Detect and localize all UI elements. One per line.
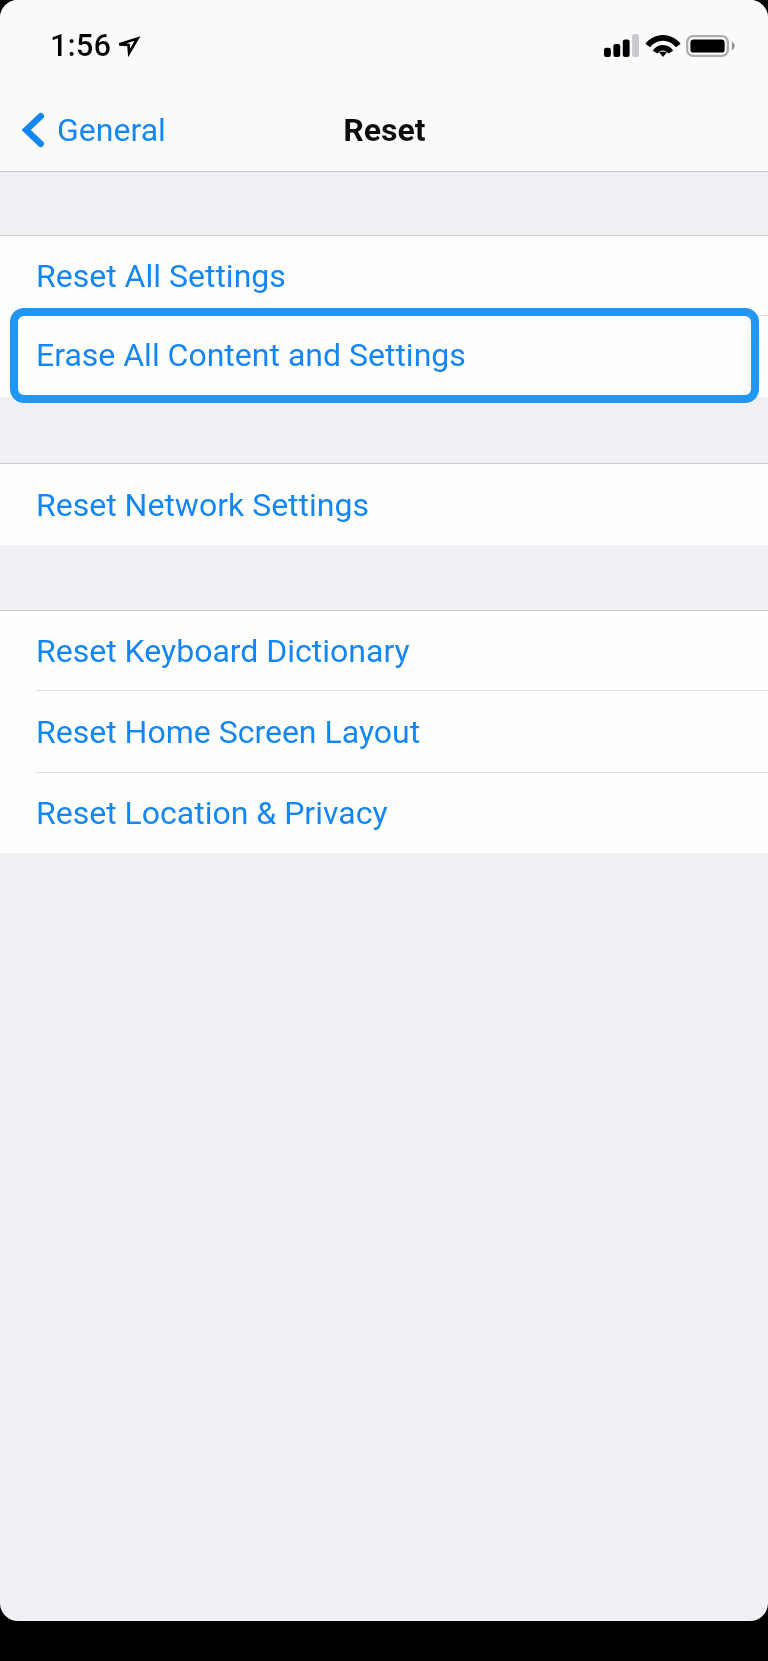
staticText: Reset Keyboard Dictionary — [36, 632, 410, 670]
button[interactable]: Erase All Content and Settings — [0, 316, 768, 397]
staticText: Reset Home Screen Layout — [36, 713, 421, 751]
staticText: Reset — [343, 111, 426, 149]
button[interactable]: Reset Location & Privacy — [0, 773, 768, 853]
staticText: Reset All Settings — [36, 257, 286, 295]
staticText: Reset Network Settings — [36, 486, 369, 524]
button[interactable]: Reset Home Screen Layout — [0, 691, 768, 773]
staticText: Reset Location & Privacy — [36, 794, 388, 832]
button[interactable]: Reset Keyboard Dictionary — [0, 611, 768, 691]
staticText: Erase All Content and Settings — [36, 336, 466, 374]
button[interactable]: Back to General — [0, 101, 180, 159]
button[interactable]: Reset Network Settings — [0, 464, 768, 545]
staticText: General — [57, 111, 166, 149]
staticText: 1:56 — [50, 27, 112, 63]
button[interactable]: Reset All Settings — [0, 236, 768, 316]
